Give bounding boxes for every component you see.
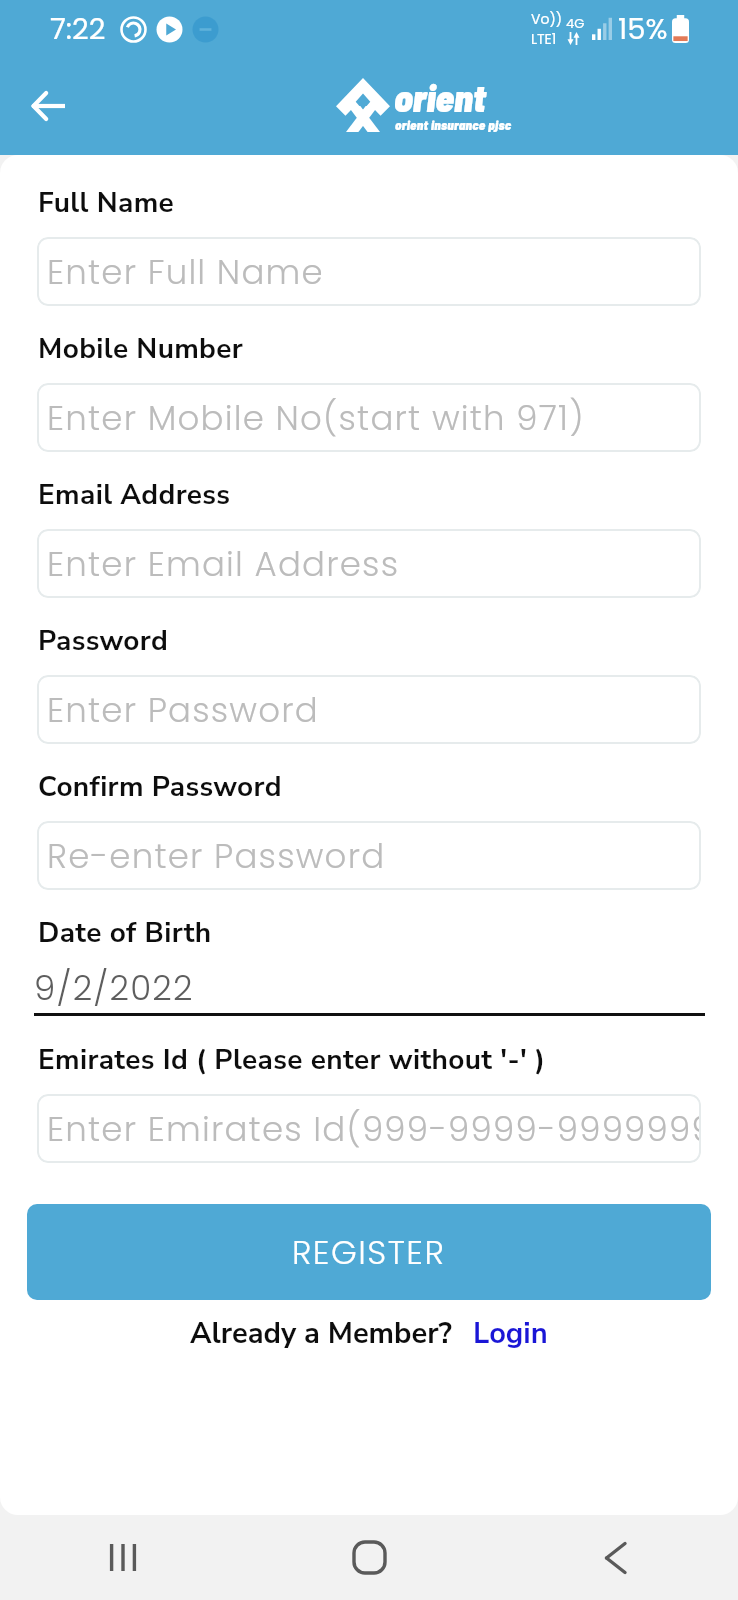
button[interactable]: Enter Full Name (37, 237, 701, 306)
staticText: Enter Full Name (47, 248, 701, 296)
staticText: REGISTER (292, 1229, 446, 1275)
button[interactable]: REGISTER (27, 1204, 711, 1300)
staticText: Date of Birth (38, 914, 212, 952)
staticText: Enter Mobile No(start with 971) (47, 394, 701, 442)
staticText: Email Address (38, 476, 231, 514)
button[interactable]: Enter Emirates Id(999-9999-9999999-9 (37, 1094, 701, 1163)
staticText: Login (473, 1314, 548, 1354)
staticText: Enter Email Address (47, 540, 701, 588)
staticText: orient insurance pjsc (395, 117, 512, 133)
button[interactable]: Recent apps (0, 1515, 246, 1600)
staticText: Already a Member? (190, 1314, 452, 1354)
button[interactable]: Back (20, 78, 76, 134)
staticText: 9/2/2022 (34, 964, 194, 1012)
staticText: Enter Emirates Id(999-9999-9999999-9 (47, 1105, 701, 1153)
button[interactable]: Login (473, 1314, 548, 1354)
staticText: Mobile Number (38, 330, 244, 368)
staticText: 7:22 (50, 9, 106, 50)
staticText: Emirates Id ( Please enter without '-' ) (38, 1041, 546, 1079)
staticText: 15% (618, 9, 668, 50)
staticText: LTE1 (531, 29, 557, 49)
button[interactable]: Re-enter Password (37, 821, 701, 890)
button[interactable]: 9/2/2022 (34, 966, 705, 1016)
staticText: 4G (566, 14, 585, 32)
staticText: Password (38, 622, 169, 660)
button[interactable]: Enter Email Address (37, 529, 701, 598)
staticText: Full Name (38, 184, 175, 222)
staticText: Confirm Password (38, 768, 282, 806)
staticText: Re-enter Password (47, 832, 701, 880)
button[interactable]: Enter Mobile No(start with 971) (37, 383, 701, 452)
button[interactable]: Home (246, 1515, 492, 1600)
staticText: Enter Password (47, 686, 701, 734)
button[interactable]: Enter Password (37, 675, 701, 744)
staticText: Vo)) (531, 9, 563, 29)
button[interactable]: Back (492, 1515, 738, 1600)
staticText: orient (394, 74, 486, 120)
